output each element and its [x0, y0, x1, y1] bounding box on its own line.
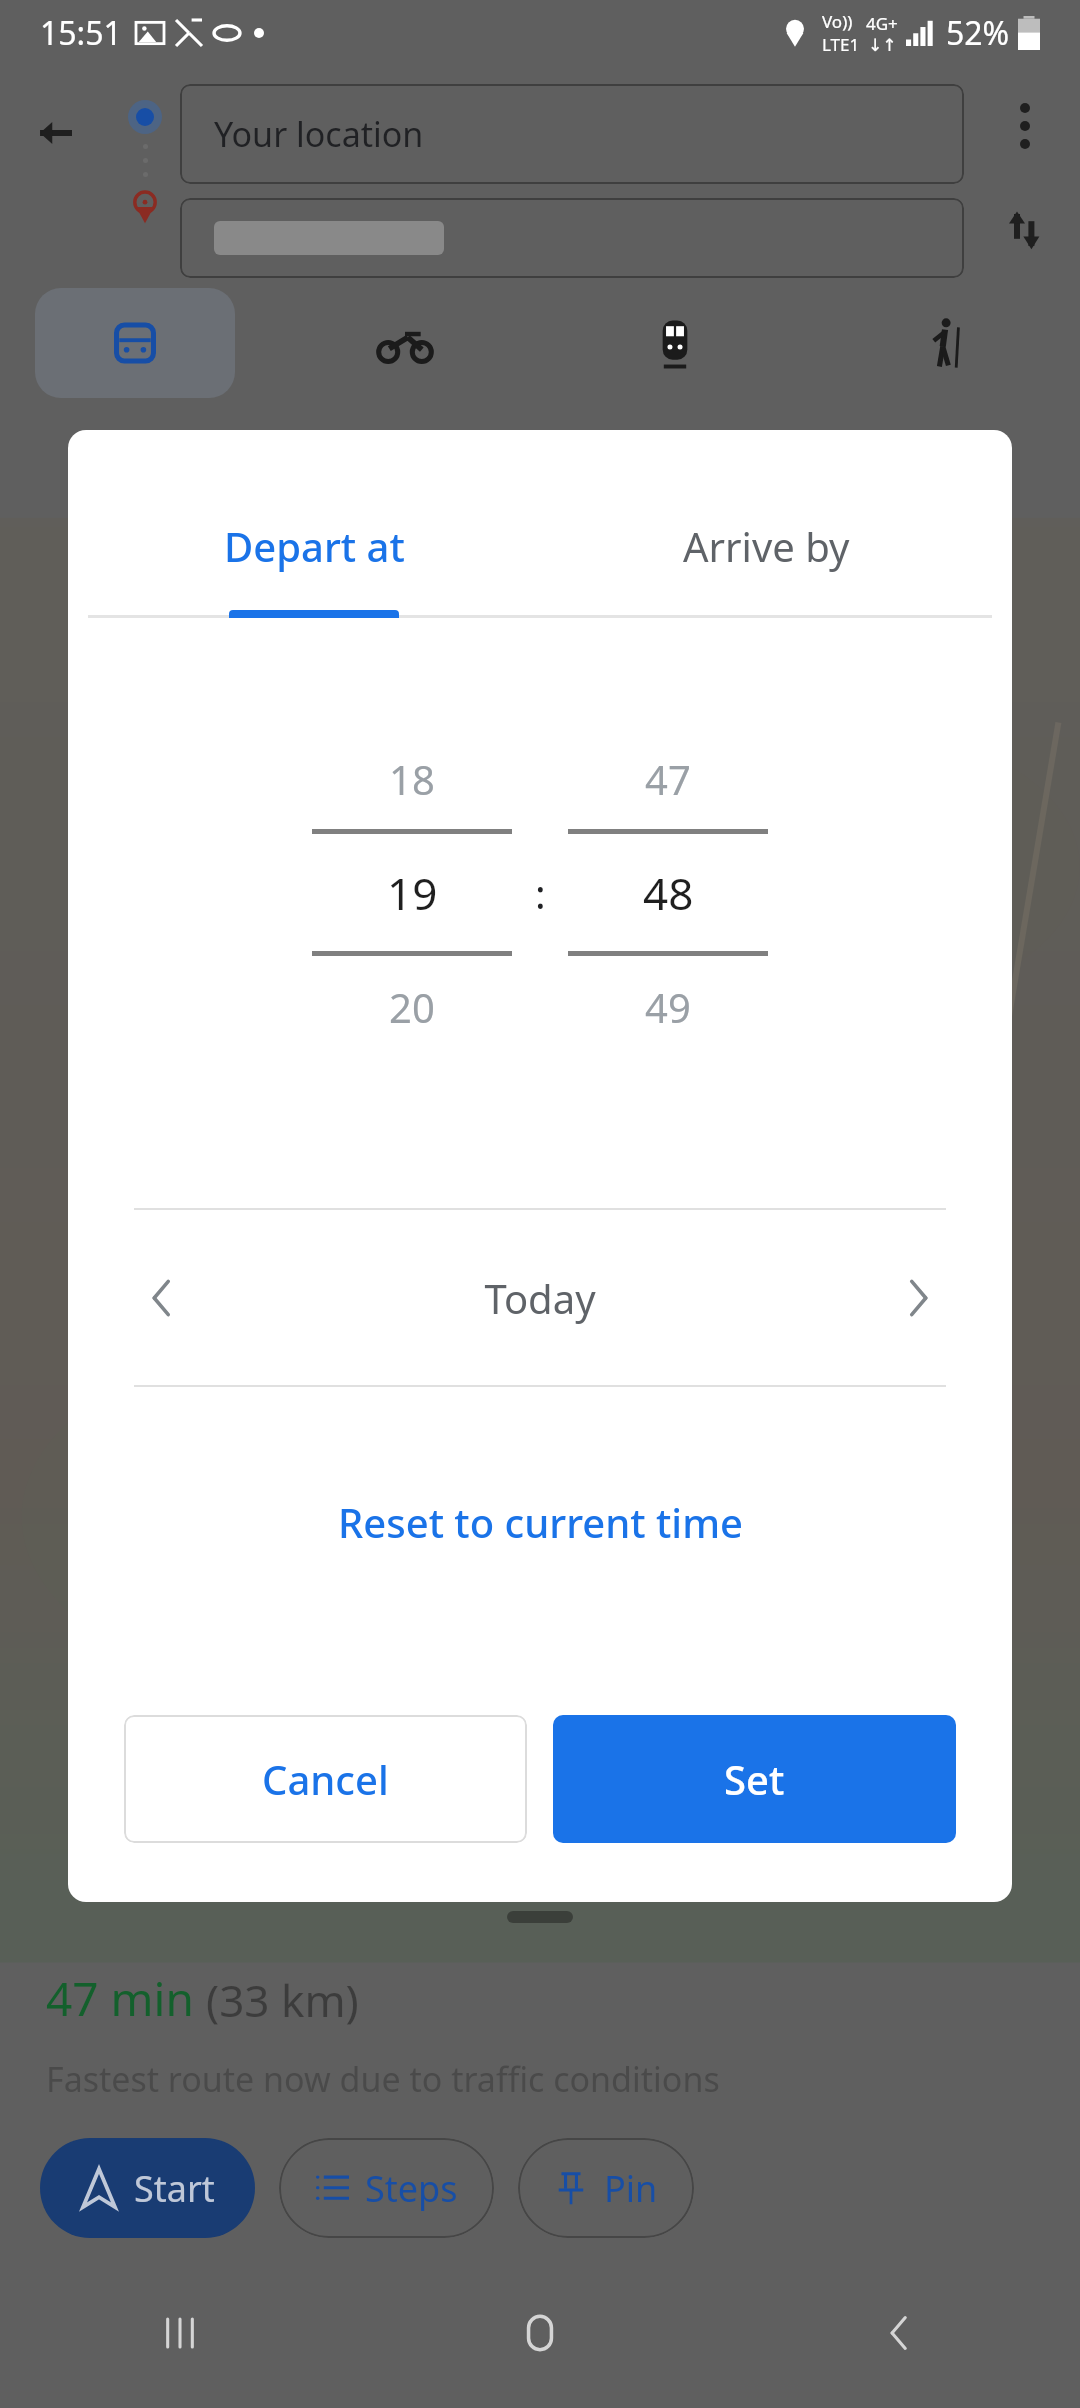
staticText: Your location [214, 111, 424, 157]
button[interactable]: 49 [568, 956, 768, 1058]
staticText: 4G+ [866, 12, 898, 35]
staticText: : [535, 866, 546, 920]
button[interactable]: Depart at [88, 482, 540, 610]
staticText: 18 [389, 752, 435, 806]
staticText: Steps [365, 2164, 458, 2213]
staticText: Arrive by [683, 519, 850, 573]
staticText: Start [134, 2164, 215, 2213]
button[interactable]: Start [40, 2138, 255, 2238]
button[interactable]: Recent apps [0, 2258, 360, 2408]
button[interactable]: Pin [518, 2138, 694, 2238]
staticText: 52% [946, 11, 1010, 55]
staticText: (33 km) [206, 1970, 359, 2030]
button[interactable]: Set [553, 1715, 956, 1843]
staticText: Pin [604, 2164, 658, 2213]
button[interactable]: Home [360, 2258, 720, 2408]
button[interactable]: Arrive by [540, 482, 992, 610]
button[interactable]: Motorcycle [270, 278, 540, 408]
staticText: 47 [645, 752, 691, 806]
staticText: Reset to current time [338, 1495, 743, 1549]
button[interactable] [180, 198, 964, 278]
button[interactable]: 48 [568, 834, 768, 951]
staticText: Today [484, 1271, 596, 1325]
button[interactable]: Reset to current time [68, 1467, 1012, 1577]
staticText: Depart at [224, 519, 405, 573]
staticText: 20 [389, 980, 435, 1034]
staticText: Vo)) [822, 10, 853, 33]
button[interactable]: Previous day [108, 1243, 218, 1353]
button[interactable]: Next day [862, 1243, 972, 1353]
button[interactable]: More options [977, 78, 1073, 174]
button[interactable]: 47 [568, 728, 768, 829]
staticText: 48 [643, 863, 694, 923]
button[interactable]: Back [0, 78, 110, 188]
button[interactable]: Back [720, 2258, 1080, 2408]
button[interactable]: Cancel [124, 1715, 527, 1843]
button[interactable]: Walking [810, 278, 1080, 408]
staticText: LTE1 [822, 33, 860, 56]
button[interactable]: 18 [312, 728, 512, 829]
button[interactable]: Swap origin and destination [977, 182, 1073, 278]
button[interactable]: 19 [312, 834, 512, 951]
staticText: ↓↑ [868, 35, 897, 55]
staticText: 49 [645, 980, 691, 1034]
staticText: Fastest route now due to traffic conditi… [46, 2056, 720, 2102]
staticText: Cancel [262, 1752, 389, 1806]
button[interactable]: Transit [540, 278, 810, 408]
staticText: 19 [387, 863, 438, 923]
button[interactable]: 20 [312, 956, 512, 1058]
staticText: 15:51 [40, 11, 122, 55]
button[interactable]: Your location [180, 84, 964, 184]
button[interactable]: Steps [279, 2138, 494, 2238]
staticText: Set [724, 1752, 785, 1806]
button[interactable]: Driving [0, 278, 270, 408]
staticText: 47 min [46, 1967, 206, 2030]
